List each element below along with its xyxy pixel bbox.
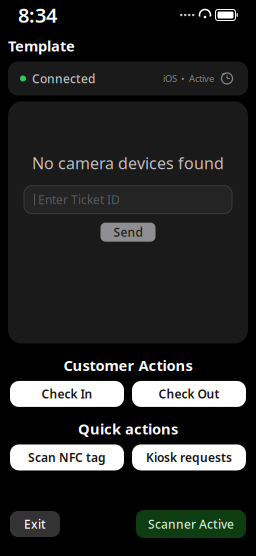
staticText: Connected — [32, 70, 95, 86]
staticText: Send — [113, 224, 142, 240]
button[interactable]: Scanner Active — [136, 510, 246, 538]
staticText: Exit — [24, 516, 46, 532]
button[interactable]: Exit — [10, 511, 60, 537]
button[interactable]: Check In — [10, 381, 124, 407]
staticText: Customer Actions — [63, 355, 192, 375]
staticText: Check Out — [158, 386, 219, 402]
button[interactable]: Kiosk requests — [132, 444, 246, 470]
staticText: • — [181, 72, 185, 85]
staticText: Quick actions — [78, 419, 178, 438]
staticText: Check In — [41, 386, 92, 402]
staticText: Scan NFC tag — [28, 449, 106, 465]
button[interactable]: Scan NFC tag — [10, 444, 124, 470]
staticText: Kiosk requests — [146, 449, 232, 465]
staticText: 8:34 — [18, 2, 57, 28]
staticText: No camera devices found — [32, 152, 224, 174]
button[interactable]: History — [218, 69, 236, 87]
staticText: iOS — [163, 72, 177, 85]
button[interactable]: Send — [100, 223, 155, 242]
button[interactable]: Check Out — [132, 381, 246, 407]
staticText: Scanner Active — [148, 516, 234, 532]
staticText: Enter Ticket ID — [38, 192, 120, 208]
staticText: Active — [189, 72, 214, 85]
staticText: Template — [8, 36, 75, 55]
